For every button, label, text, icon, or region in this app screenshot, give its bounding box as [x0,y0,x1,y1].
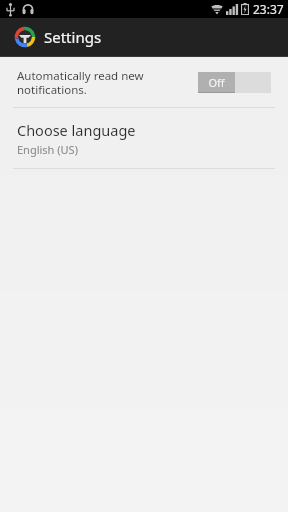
staticText: Off [208,75,225,90]
button[interactable]: Choose language [0,108,288,168]
button[interactable]: Automatically read new notifications. [0,57,288,107]
staticText: English (US) [17,142,78,157]
staticText: Choose language [17,120,136,140]
staticText: 23:37 [253,1,284,17]
button[interactable]: Automatically read new notifications tog… [198,72,271,93]
staticText: Automatically read new notifications. [17,68,198,97]
other: App icon [14,26,36,48]
staticText: Settings [44,27,102,47]
